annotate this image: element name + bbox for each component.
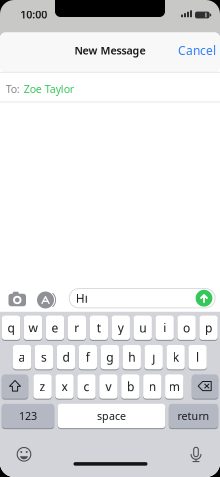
staticText: d <box>62 349 69 365</box>
staticText: j <box>152 349 155 365</box>
button[interactable]: Emoji <box>15 445 33 463</box>
staticText: v <box>105 379 111 394</box>
button[interactable]: Send <box>195 290 212 307</box>
button[interactable]: o <box>177 315 196 340</box>
button[interactable]: p <box>199 315 218 340</box>
button[interactable]: s <box>35 344 53 370</box>
staticText: 10:00 <box>20 7 47 21</box>
staticText: q <box>7 320 14 336</box>
button[interactable]: y <box>111 315 130 340</box>
staticText: k <box>173 349 179 365</box>
staticText: b <box>127 379 134 394</box>
button[interactable]: return <box>169 403 218 429</box>
button[interactable]: j <box>144 344 163 370</box>
button[interactable]: u <box>133 315 152 340</box>
staticText: New Message <box>74 43 145 57</box>
button[interactable]: v <box>99 374 118 399</box>
staticText: c <box>83 379 89 394</box>
button[interactable]: h <box>122 344 141 370</box>
staticText: m <box>169 379 180 394</box>
staticText: return <box>177 409 209 423</box>
button[interactable]: t <box>90 315 108 340</box>
button[interactable]: g <box>101 344 119 370</box>
staticText: u <box>139 320 146 336</box>
button[interactable]: k <box>166 344 185 370</box>
staticText: h <box>128 349 135 365</box>
button[interactable]: Cancel <box>178 42 216 58</box>
staticText: e <box>51 320 58 336</box>
button[interactable]: b <box>121 374 140 399</box>
button[interactable]: w <box>24 315 42 340</box>
staticText: l <box>196 349 199 365</box>
button[interactable]: n <box>143 374 162 399</box>
button[interactable]: f <box>79 344 97 370</box>
staticText: space <box>97 409 126 423</box>
staticText: x <box>61 379 67 394</box>
staticText: Zoe Taylor <box>24 82 74 96</box>
staticText: f <box>86 349 90 365</box>
staticText: To: <box>6 82 20 96</box>
button[interactable]: e <box>46 315 64 340</box>
staticText: n <box>149 379 156 394</box>
button[interactable]: Shift <box>2 374 28 399</box>
staticText: 123 <box>19 409 37 423</box>
staticText: s <box>41 349 47 365</box>
staticText: r <box>74 320 79 336</box>
button[interactable]: m <box>165 374 183 399</box>
staticText: Cancel <box>178 42 216 58</box>
button[interactable]: Hi <box>69 288 216 308</box>
staticText: t <box>97 320 101 336</box>
button[interactable]: c <box>77 374 96 399</box>
button[interactable]: q <box>2 315 20 340</box>
staticText: y <box>118 320 124 336</box>
button[interactable]: z <box>33 374 52 399</box>
staticText: Hi <box>76 290 88 306</box>
button[interactable]: Apps <box>34 291 56 309</box>
staticText: w <box>28 320 37 336</box>
button[interactable]: r <box>68 315 86 340</box>
button[interactable]: Delete <box>192 374 218 399</box>
button[interactable]: Camera <box>7 291 27 308</box>
staticText: i <box>163 320 166 336</box>
button[interactable]: Dictation <box>188 445 204 464</box>
staticText: g <box>106 349 113 365</box>
staticText: o <box>183 320 190 336</box>
button[interactable]: space <box>58 403 165 429</box>
staticText: a <box>18 349 25 365</box>
staticText: z <box>40 379 46 394</box>
button[interactable]: 123 <box>2 403 54 429</box>
button[interactable]: l <box>188 344 207 370</box>
button[interactable]: x <box>55 374 74 399</box>
staticText: p <box>205 320 212 336</box>
button[interactable]: i <box>155 315 174 340</box>
button[interactable]: d <box>57 344 75 370</box>
button[interactable]: a <box>13 344 31 370</box>
